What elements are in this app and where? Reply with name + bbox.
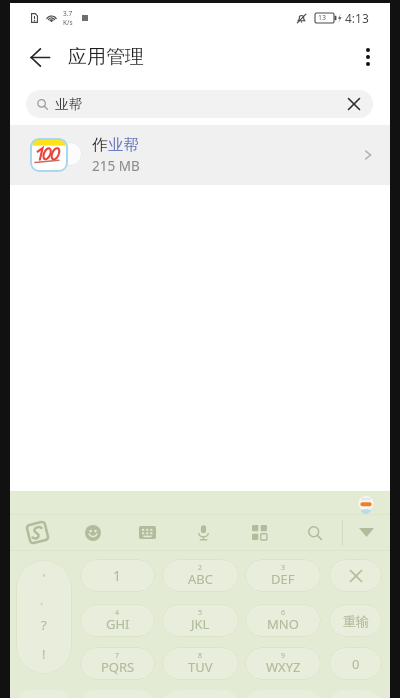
staticText: 2: [198, 563, 203, 573]
staticText: 6: [281, 608, 286, 618]
button[interactable]: 作: [10, 125, 390, 185]
button[interactable]: mic: [175, 515, 231, 550]
button[interactable]: search: [287, 515, 343, 550]
staticText: 3: [281, 563, 286, 573]
button[interactable]: 1: [80, 559, 155, 592]
button[interactable]: 8: [162, 647, 239, 680]
staticText: 作: [92, 135, 108, 155]
staticText: !: [42, 645, 46, 663]
staticText: 1: [113, 566, 122, 585]
button[interactable]: 4: [80, 604, 155, 637]
staticText: 。: [40, 596, 48, 606]
button[interactable]: key: [329, 690, 382, 698]
staticText: 应用管理: [68, 45, 144, 69]
staticText: 9: [281, 651, 286, 661]
button[interactable]: key: [16, 690, 72, 698]
button[interactable]: More options: [350, 39, 386, 75]
staticText: GHI: [106, 615, 130, 633]
staticText: ?: [41, 616, 47, 634]
staticText: PQRS: [101, 658, 135, 676]
staticText: TUV: [188, 658, 213, 676]
staticText: JKL: [191, 615, 210, 633]
staticText: 3.7: [63, 9, 73, 18]
staticText: DEF: [271, 570, 295, 588]
staticText: K/s: [63, 18, 73, 27]
button[interactable]: 5: [162, 604, 239, 637]
staticText: ': [43, 571, 46, 585]
button[interactable]: sogou: [10, 515, 65, 550]
staticText: WXYZ: [266, 658, 301, 676]
staticText: ABC: [188, 570, 213, 588]
button[interactable]: 3: [245, 559, 321, 592]
staticText: 业帮: [108, 135, 139, 155]
staticText: 4: [115, 608, 120, 618]
button[interactable]: kb: [120, 515, 175, 550]
staticText: 13: [318, 13, 327, 23]
button[interactable]: Account: [358, 495, 374, 513]
button[interactable]: emoji: [65, 515, 120, 550]
button[interactable]: Delete: [329, 559, 382, 592]
staticText: 重输: [343, 613, 369, 629]
staticText: 215 MB: [92, 157, 140, 175]
button[interactable]: grid: [231, 515, 287, 550]
button[interactable]: 0: [329, 647, 382, 680]
button[interactable]: Back: [21, 38, 59, 76]
button[interactable]: 7: [80, 647, 155, 680]
staticText: MNO: [267, 615, 299, 633]
button[interactable]: Clear text: [335, 90, 373, 118]
staticText: 7: [115, 651, 120, 661]
staticText: 4:13: [345, 10, 369, 26]
staticText: 业帮: [55, 96, 82, 113]
button[interactable]: 重输: [329, 604, 382, 637]
button[interactable]: Hide keyboard: [343, 515, 390, 550]
button[interactable]: symbols: [16, 560, 72, 674]
staticText: 0: [352, 655, 360, 673]
button[interactable]: 业帮: [26, 90, 373, 118]
staticText: 8: [198, 651, 203, 661]
button[interactable]: 6: [245, 604, 321, 637]
staticText: 5: [198, 608, 203, 618]
button[interactable]: 2: [162, 559, 239, 592]
button[interactable]: 9: [245, 647, 321, 680]
